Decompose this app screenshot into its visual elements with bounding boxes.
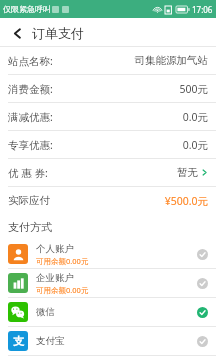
staticText: 可用余额0.00元 [36, 285, 89, 295]
staticText: 暂无 [177, 166, 198, 179]
staticText: 订单支付 [32, 25, 84, 41]
button[interactable]: 实际应付 [0, 187, 216, 214]
button[interactable]: 满减优惠: [0, 103, 216, 130]
staticText: 0.0元 [182, 138, 208, 152]
staticText: 仅限紧急呼叫 [3, 4, 51, 14]
staticText: 微信 [36, 306, 55, 318]
button[interactable]: 消费金额: [0, 75, 216, 102]
button[interactable]: 站点名称: [0, 47, 216, 74]
staticText: ¥500.0元 [164, 194, 208, 208]
button[interactable]: 微信 [0, 298, 216, 326]
staticText: 司集能源加气站 [134, 54, 208, 67]
button[interactable]: 优 惠 券: [0, 159, 216, 186]
staticText: 消费金额: [8, 82, 53, 96]
staticText: 优 惠 券: [8, 166, 48, 180]
staticText: 0.0元 [182, 110, 208, 124]
staticText: 个人账户 [36, 243, 74, 255]
staticText: 专享优惠: [8, 138, 53, 152]
staticText: 可用余额0.00元 [36, 256, 89, 266]
staticText: 支付宝 [36, 335, 65, 347]
button[interactable]: 支 [0, 327, 216, 355]
staticText: 实际应付 [8, 194, 50, 207]
button[interactable]: 企业账户 [0, 269, 216, 297]
button[interactable]: 个人账户 [0, 240, 216, 268]
staticText: 满减优惠: [8, 110, 53, 124]
staticText: 站点名称: [8, 54, 53, 68]
button[interactable]: Back [6, 22, 28, 44]
staticText: 支付方式 [8, 220, 52, 234]
staticText: 500元 [179, 82, 208, 96]
staticText: 17:06 [192, 4, 213, 15]
staticText: 支 [13, 334, 24, 348]
button[interactable]: 专享优惠: [0, 131, 216, 158]
staticText: 企业账户 [36, 272, 74, 284]
